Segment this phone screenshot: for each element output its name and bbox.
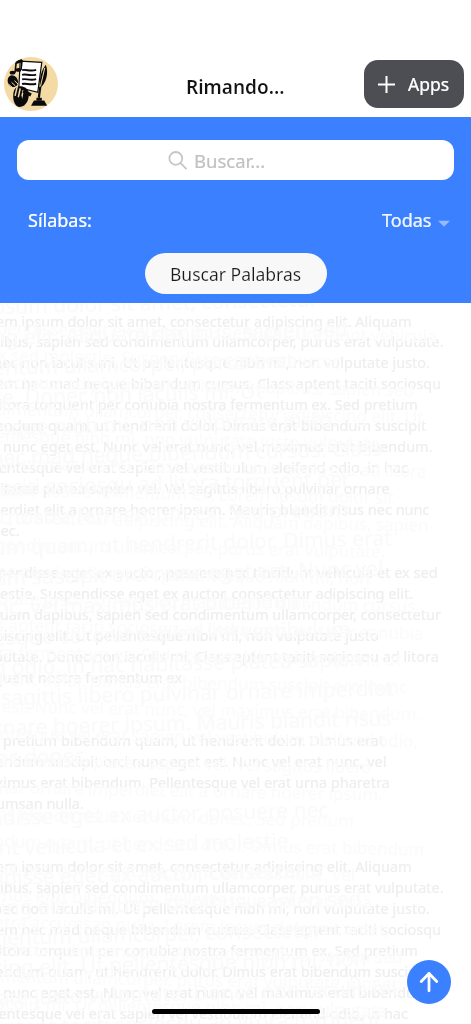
- button[interactable]: Buscar...: [17, 140, 454, 180]
- button[interactable]: Scroll to top: [407, 960, 451, 1004]
- button[interactable]: Buscar Palabras: [145, 253, 327, 294]
- staticText: Apps: [408, 72, 450, 96]
- button[interactable]: Todas: [382, 208, 450, 232]
- staticText: Lorem ipsum dolor sit amet, consectetur …: [0, 282, 413, 1024]
- button[interactable]: Apps: [364, 60, 464, 108]
- staticText: Buscar Palabras: [170, 262, 302, 286]
- staticText: Suspendisse eget ex auctor, posuere nec …: [0, 316, 440, 1024]
- staticText: Lorem ipsum dolor sit amet, consectetur …: [0, 311, 445, 1024]
- staticText: Rimando...: [186, 74, 285, 100]
- staticText: Sílabas:: [28, 208, 92, 232]
- staticText: Todas: [382, 208, 432, 232]
- button[interactable]: Profile: [4, 57, 58, 111]
- staticText: Buscar...: [194, 148, 266, 173]
